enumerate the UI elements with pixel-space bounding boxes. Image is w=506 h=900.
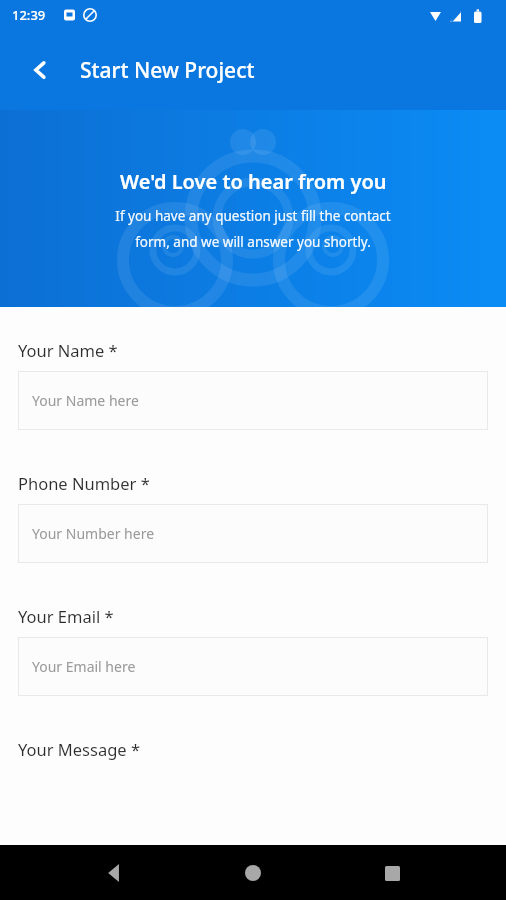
staticText: Phone Number *: [18, 472, 150, 494]
staticText: Start New Project: [80, 56, 255, 85]
button[interactable]: Recent apps: [368, 849, 416, 897]
button[interactable]: Home: [229, 849, 277, 897]
staticText: Your Email here: [32, 657, 136, 676]
button[interactable]: Your Name here: [18, 371, 488, 430]
staticText: Your Name here: [32, 391, 139, 410]
staticText: Your Message *: [18, 738, 140, 760]
button[interactable]: Back: [18, 48, 62, 92]
staticText: Your Email *: [18, 605, 114, 627]
staticText: Your Number here: [32, 524, 155, 543]
staticText: If you have any question just fill the c…: [24, 207, 482, 251]
staticText: 12:39: [12, 6, 46, 24]
staticText: We'd Love to hear from you: [120, 168, 387, 195]
button[interactable]: Your Email here: [18, 637, 488, 696]
button[interactable]: Your Number here: [18, 504, 488, 563]
staticText: Your Name *: [18, 339, 118, 361]
button[interactable]: Back: [91, 849, 139, 897]
